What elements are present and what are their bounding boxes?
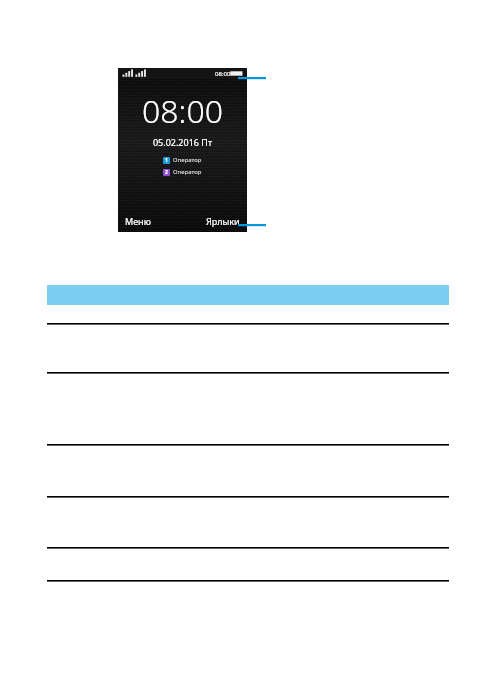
staticText: Ярлыки <box>206 215 240 227</box>
staticText: 08:00 <box>215 70 231 78</box>
staticText: 08:00 <box>118 89 247 133</box>
staticText: 05.02.2016 Пт <box>118 136 247 148</box>
button[interactable]: 2 <box>163 167 202 177</box>
staticText: 2 <box>165 169 168 176</box>
button[interactable]: Меню <box>122 213 154 229</box>
staticText: 1 <box>165 157 168 164</box>
staticText: Оператор <box>173 168 202 176</box>
button[interactable]: Ярлыки <box>203 213 243 229</box>
staticText: Меню <box>125 215 151 227</box>
staticText: Оператор <box>173 156 202 164</box>
button[interactable]: 1 <box>163 155 202 165</box>
